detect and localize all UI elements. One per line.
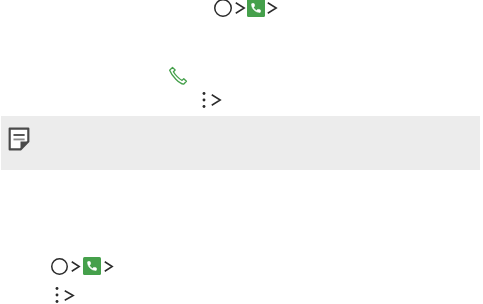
button[interactable]: Recents then Phone app — [214, 0, 277, 17]
button[interactable]: More options — [55, 287, 74, 303]
button[interactable]: Recents then Phone app — [51, 257, 113, 275]
button[interactable]: More options — [202, 92, 221, 108]
